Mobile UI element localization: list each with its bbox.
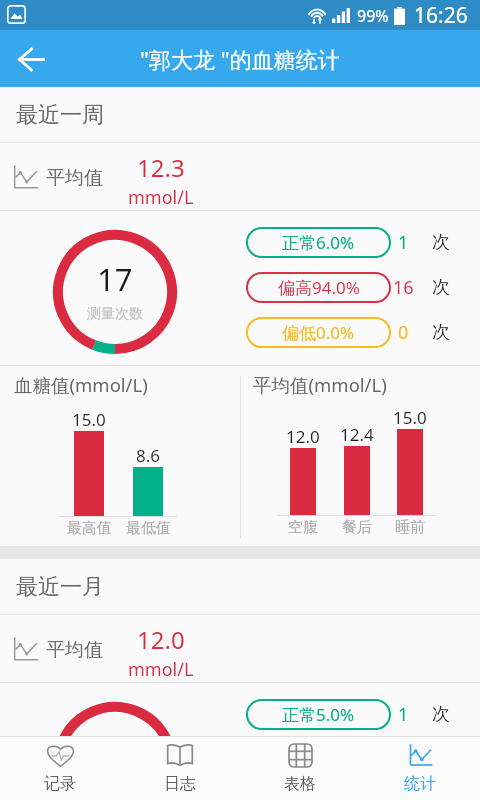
staticText: 餐后 — [342, 518, 372, 537]
staticText: 12.3 — [137, 151, 185, 184]
staticText: 最近一周 — [16, 101, 104, 129]
staticText: 0 — [398, 320, 409, 345]
staticText: mmol/L — [128, 185, 194, 210]
staticText: 次 — [432, 231, 450, 254]
staticText: 12.4 — [340, 423, 374, 446]
button[interactable]: 表格 — [240, 737, 360, 800]
staticText: 12.0 — [137, 623, 185, 656]
staticText: 16 — [393, 275, 414, 300]
button[interactable]: Back — [5, 33, 57, 85]
staticText: 日志 — [164, 774, 196, 794]
staticText: 统计 — [404, 774, 436, 794]
staticText: 正常6.0% — [282, 231, 355, 254]
staticText: 最近一月 — [16, 573, 104, 601]
staticText: 15.0 — [72, 408, 106, 431]
staticText: "郭大龙 "的血糖统计 — [140, 44, 340, 74]
staticText: 睡前 — [395, 518, 425, 537]
staticText: 最高值 — [67, 519, 112, 538]
button[interactable]: 偏高94.0% — [246, 272, 391, 303]
staticText: 偏低0.0% — [282, 321, 355, 344]
staticText: mmol/L — [128, 657, 194, 682]
staticText: 空腹 — [288, 518, 318, 537]
staticText: 测量次数 — [87, 305, 143, 323]
staticText: 次 — [432, 276, 450, 299]
button[interactable]: 正常5.0% — [246, 699, 391, 730]
staticText: 次 — [432, 703, 450, 726]
staticText: 表格 — [284, 774, 316, 794]
staticText: 16:26 — [414, 1, 468, 30]
staticText: 血糖值(mmol/L) — [14, 372, 148, 397]
button[interactable]: 正常6.0% — [246, 227, 391, 258]
staticText: 1 — [398, 230, 409, 255]
staticText: 1 — [398, 702, 409, 727]
staticText: 平均值 — [46, 638, 103, 662]
staticText: 次 — [432, 321, 450, 344]
button[interactable]: 记录 — [0, 737, 120, 800]
button[interactable]: 统计 — [360, 737, 480, 800]
staticText: 12.0 — [286, 425, 320, 448]
button[interactable]: 偏低0.0% — [246, 317, 391, 348]
staticText: 99% — [357, 5, 389, 27]
staticText: 15.0 — [393, 406, 427, 429]
staticText: 记录 — [44, 774, 76, 794]
staticText: 偏高94.0% — [278, 276, 360, 299]
staticText: 正常5.0% — [282, 703, 355, 726]
staticText: 平均值 — [46, 166, 103, 190]
button[interactable]: 日志 — [120, 737, 240, 800]
staticText: 8.6 — [136, 444, 161, 467]
staticText: 平均值(mmol/L) — [253, 372, 387, 397]
staticText: 最低值 — [126, 519, 171, 538]
staticText: 17 — [97, 258, 133, 300]
